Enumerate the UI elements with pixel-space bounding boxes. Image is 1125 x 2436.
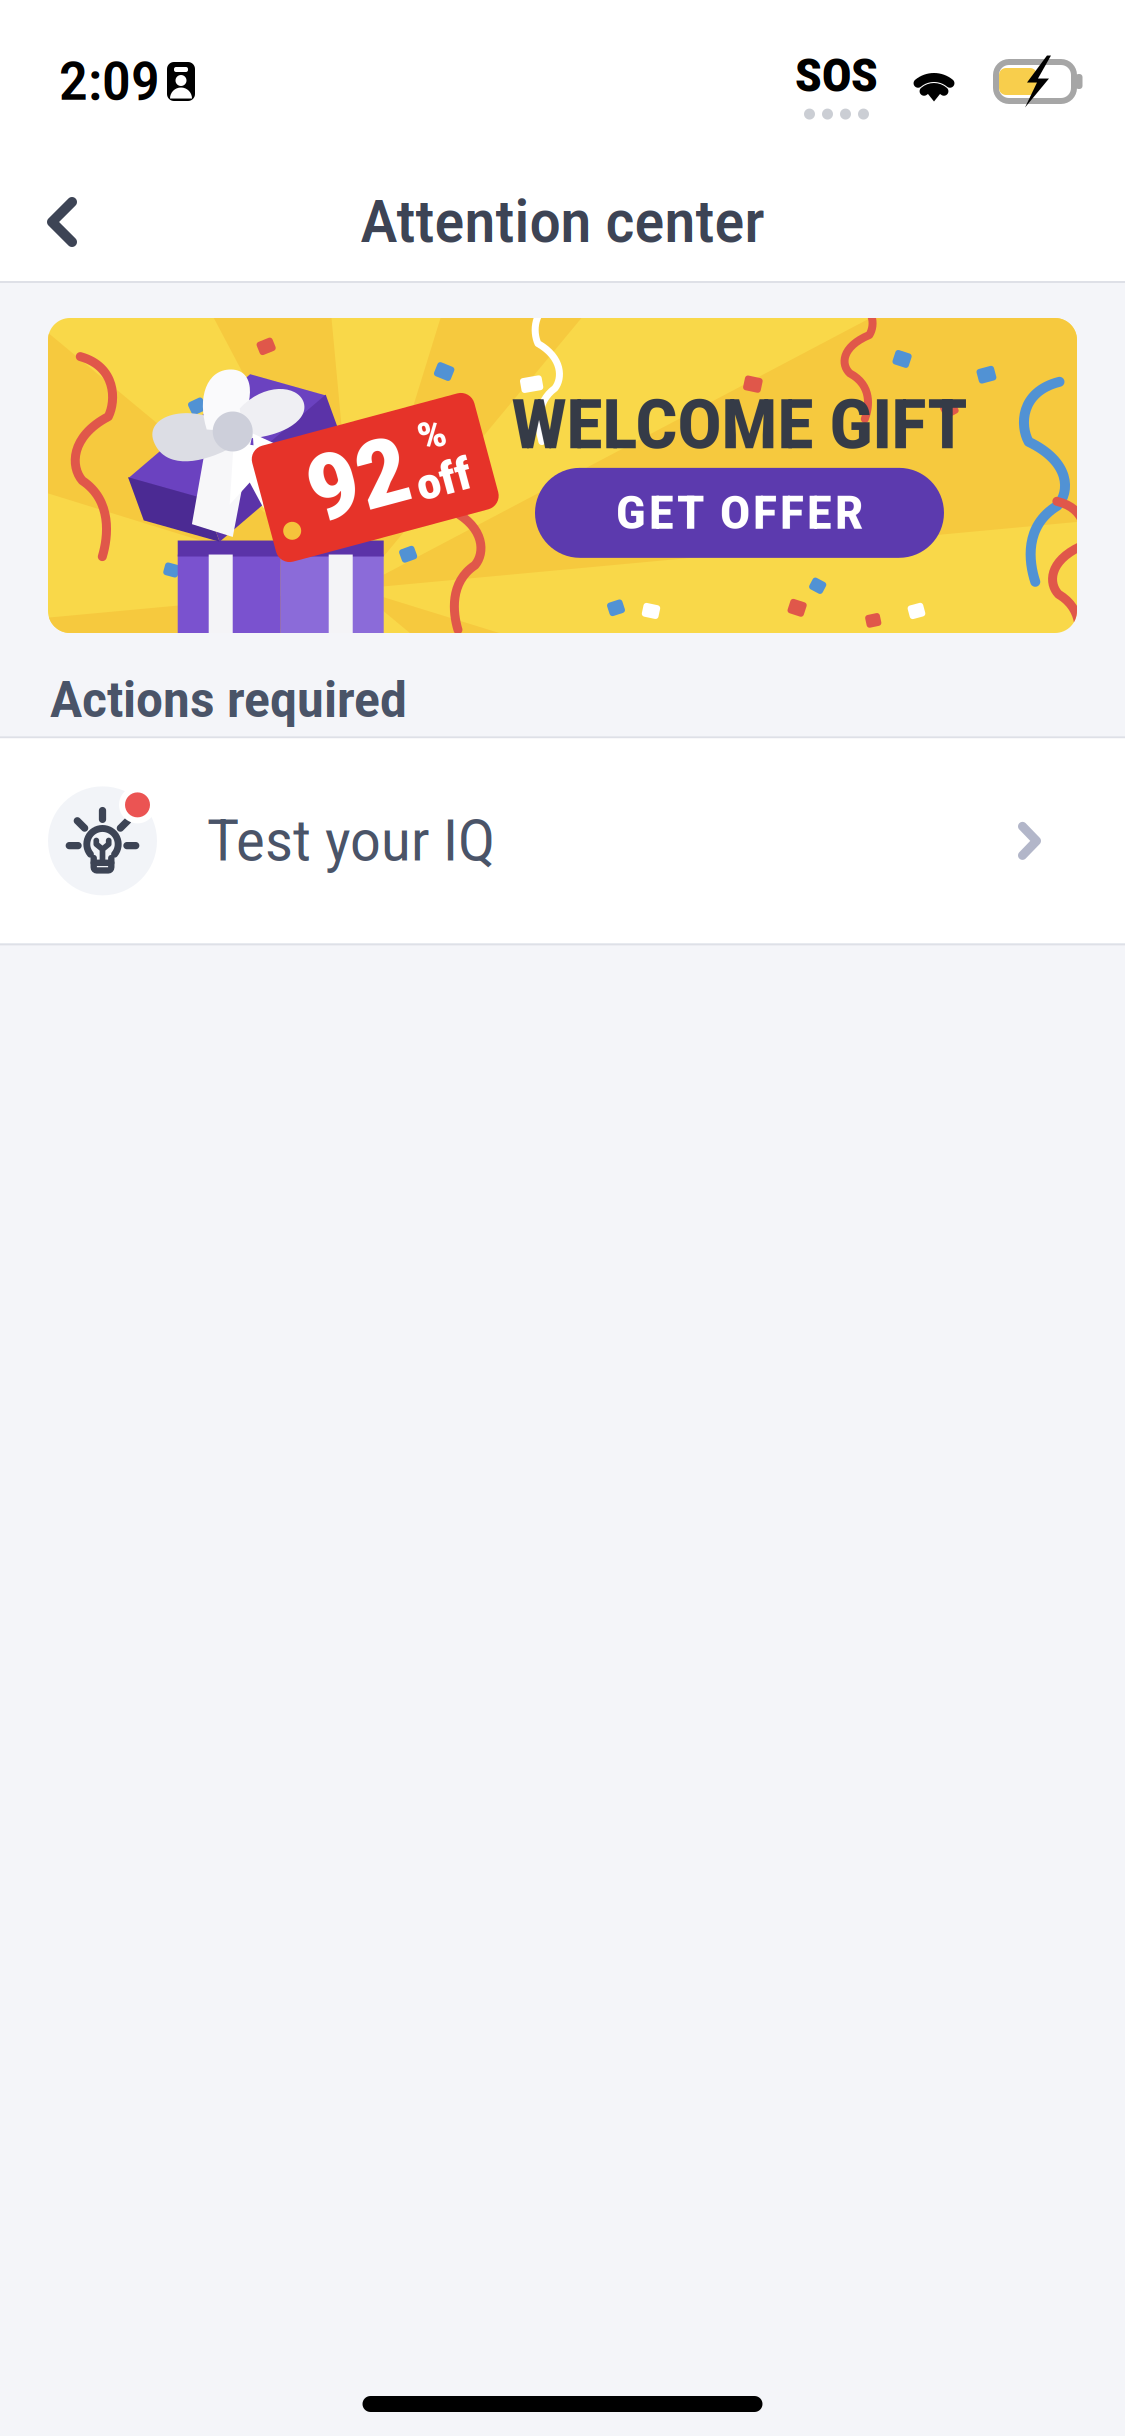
button[interactable]: Back xyxy=(12,172,112,272)
staticText: off xyxy=(413,470,469,523)
staticText: Actions required xyxy=(50,670,407,729)
staticText: Attention center xyxy=(360,188,764,256)
button[interactable]: GET OFFER xyxy=(535,468,944,558)
staticText: 92 xyxy=(307,421,409,530)
staticText: SOS xyxy=(795,49,878,102)
staticText: GET OFFER xyxy=(616,485,863,540)
staticText: WELCOME GIFT xyxy=(511,385,967,465)
staticText: 2:09 xyxy=(59,50,160,113)
staticText: Test your IQ xyxy=(207,807,495,874)
staticText: % xyxy=(427,427,455,474)
button[interactable]: 92 xyxy=(48,318,1077,633)
button[interactable]: Test your IQ xyxy=(0,738,1125,943)
